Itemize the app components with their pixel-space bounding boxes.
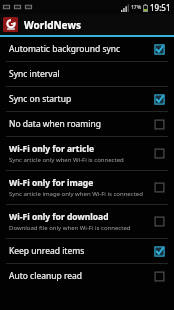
other: App icon (3, 17, 18, 32)
staticText: Automatic background sync (9, 43, 121, 55)
button[interactable]: Sync interval (0, 62, 174, 86)
staticText: Wi-Fi only for article (9, 143, 95, 155)
staticText: Auto cleanup read (9, 270, 83, 282)
button[interactable]: Sync on startup (0, 87, 174, 111)
staticText: 19:51 (150, 2, 171, 13)
staticText: Sync article only when Wi-Fi is connecte… (9, 156, 124, 164)
button[interactable]: Automatic background sync (0, 37, 174, 61)
staticText: Sync article image only when Wi-Fi is co… (9, 190, 143, 198)
staticText: 17% (131, 4, 142, 11)
staticText: WorldNews (24, 18, 81, 32)
staticText: Sync interval (9, 68, 60, 80)
button[interactable]: Wi-Fi only for image (0, 171, 174, 204)
staticText: Download file only when Wi-Fi is connect… (9, 224, 131, 232)
staticText: Keep unread items (9, 245, 85, 257)
button[interactable]: Keep unread items (0, 239, 174, 263)
button[interactable]: Wi-Fi only for download (0, 205, 174, 238)
button[interactable]: No data when roaming (0, 112, 174, 136)
staticText: Wi-Fi only for image (9, 177, 94, 189)
staticText: No data when roaming (9, 118, 101, 130)
staticText: Wi-Fi only for download (9, 211, 109, 223)
button[interactable]: Wi-Fi only for article (0, 137, 174, 170)
button[interactable]: Auto cleanup read (0, 264, 174, 288)
staticText: Sync on startup (9, 93, 72, 105)
